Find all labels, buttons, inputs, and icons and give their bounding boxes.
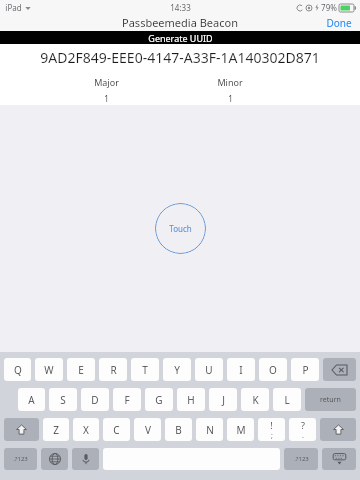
button[interactable]: O — [259, 358, 287, 381]
button[interactable]: F — [113, 388, 141, 411]
button[interactable]: return — [305, 388, 356, 411]
button[interactable]: R — [99, 358, 127, 381]
button[interactable]: S — [49, 388, 77, 411]
button[interactable]: Shift — [4, 418, 39, 441]
button[interactable]: Hide keyboard — [322, 448, 356, 470]
staticText: 79% — [321, 2, 337, 13]
staticText: .?123 — [294, 455, 309, 463]
staticText: Generate UUID — [148, 32, 213, 44]
button[interactable]: E — [67, 358, 95, 381]
button[interactable]: J — [209, 388, 237, 411]
staticText: F — [124, 393, 130, 407]
button[interactable]: C — [103, 418, 130, 441]
staticText: Z — [53, 423, 59, 437]
staticText: L — [284, 393, 290, 407]
button[interactable]: Change keyboard — [41, 448, 68, 470]
button[interactable]: Shift — [320, 418, 356, 441]
staticText: 14:33 — [170, 2, 191, 13]
staticText: ? — [301, 419, 305, 431]
staticText: return — [320, 395, 341, 405]
button[interactable]: Y — [163, 358, 191, 381]
button[interactable]: H — [177, 388, 205, 411]
button[interactable]: .?123 — [284, 448, 318, 470]
button[interactable]: Q — [4, 358, 31, 381]
staticText: V — [145, 423, 151, 437]
staticText: iPad — [5, 2, 22, 13]
staticText: Touch — [169, 223, 192, 234]
button[interactable]: W — [35, 358, 63, 381]
button[interactable]: Done — [318, 14, 360, 31]
staticText: C — [113, 423, 120, 437]
staticText: M — [236, 423, 246, 437]
staticText: G — [155, 393, 163, 407]
staticText: R — [110, 363, 117, 377]
button[interactable]: ? — [289, 418, 316, 441]
staticText: X — [83, 423, 89, 437]
staticText: I — [239, 363, 243, 377]
button[interactable]: Generate UUID — [0, 31, 360, 44]
staticText: D — [91, 393, 99, 407]
button[interactable]: Dictate — [72, 448, 99, 470]
button[interactable]: A — [18, 388, 45, 411]
staticText: W — [44, 363, 54, 377]
staticText: U — [205, 363, 213, 377]
button[interactable]: B — [165, 418, 192, 441]
button[interactable]: ! — [258, 418, 285, 441]
button[interactable]: .?123 — [4, 448, 37, 470]
staticText: T — [142, 363, 148, 377]
button[interactable]: I — [227, 358, 255, 381]
button[interactable]: X — [73, 418, 99, 441]
button[interactable]: U — [195, 358, 223, 381]
staticText: P — [302, 363, 309, 377]
button[interactable]: Backspace — [323, 358, 356, 381]
staticText: S — [60, 393, 66, 407]
staticText: Y — [174, 363, 180, 377]
staticText: N — [206, 423, 214, 437]
staticText: J — [222, 393, 225, 407]
staticText: E — [78, 363, 84, 377]
staticText: Minor — [217, 76, 243, 88]
staticText: ; — [271, 431, 273, 441]
button[interactable]: Z — [43, 418, 69, 441]
button[interactable]: V — [134, 418, 161, 441]
button[interactable]: N — [196, 418, 223, 441]
staticText: B — [175, 423, 182, 437]
staticText: 1 — [228, 93, 233, 104]
staticText: Major — [94, 76, 119, 88]
staticText: .?123 — [13, 455, 28, 463]
staticText: 9AD2F849-EEE0-4147-A33F-1A140302D871 — [40, 48, 320, 67]
button[interactable]: K — [241, 388, 269, 411]
button[interactable]: L — [273, 388, 301, 411]
staticText: A — [28, 393, 35, 407]
button[interactable]: M — [227, 418, 254, 441]
staticText: 1 — [104, 93, 109, 104]
staticText: Passbeemedia Beacon — [122, 15, 238, 30]
staticText: ! — [270, 419, 273, 431]
button[interactable]: G — [145, 388, 173, 411]
button[interactable]: T — [131, 358, 159, 381]
staticText: H — [187, 393, 195, 407]
staticText: . — [302, 431, 304, 441]
button[interactable]: Touch — [155, 203, 206, 254]
staticText: K — [252, 393, 259, 407]
button[interactable]: D — [81, 388, 109, 411]
staticText: Done — [326, 16, 352, 29]
staticText: O — [269, 363, 277, 377]
button[interactable]: P — [291, 358, 319, 381]
staticText: Q — [14, 363, 22, 377]
